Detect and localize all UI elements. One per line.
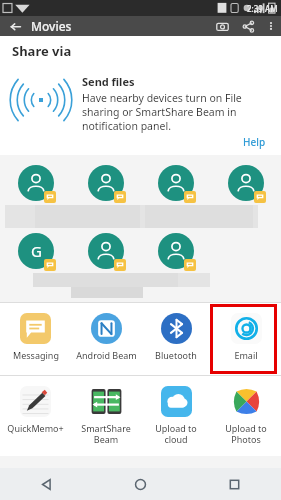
staticText: 2:39 AM — [247, 3, 278, 14]
staticText: G — [31, 241, 42, 261]
button[interactable]: Back — [0, 16, 30, 36]
button[interactable]: Recent apps — [187, 468, 281, 500]
button[interactable]: More options — [261, 16, 281, 36]
button[interactable]: Contact — [86, 231, 126, 271]
staticText: Movies — [31, 18, 72, 34]
button[interactable]: Contact — [86, 163, 126, 203]
button[interactable]: Back — [0, 468, 93, 500]
button[interactable]: Contact — [226, 163, 266, 203]
staticText: Have nearby devices turn on File sharing… — [82, 91, 271, 133]
staticText: Bluetooth — [155, 349, 197, 361]
button[interactable]: Capture — [209, 16, 235, 36]
button[interactable]: Contact — [156, 231, 196, 271]
button[interactable]: Email — [211, 303, 281, 375]
staticText: Help — [243, 135, 266, 149]
button[interactable]: Bluetooth — [141, 303, 211, 375]
button[interactable]: Contact — [16, 231, 56, 271]
staticText: Upload to cloud — [155, 422, 197, 445]
button[interactable]: Home — [93, 468, 187, 500]
button[interactable]: Upload to cloud — [141, 376, 211, 456]
staticText: QuickMemo+ — [7, 422, 64, 434]
staticText: Android Beam — [76, 349, 137, 361]
staticText: Email — [234, 349, 258, 361]
button[interactable]: Help — [241, 134, 268, 150]
button[interactable]: QuickMemo+ — [0, 376, 71, 456]
button[interactable]: Messaging — [0, 303, 71, 375]
staticText: SmartShare Beam — [81, 422, 131, 445]
button[interactable]: Upload to Photos — [211, 376, 281, 456]
button[interactable]: Contact — [156, 163, 196, 203]
staticText: Send files — [82, 74, 135, 89]
staticText: Upload to Photos — [225, 422, 267, 445]
staticText: Share via — [12, 42, 72, 60]
button[interactable]: SmartShare Beam — [71, 376, 141, 456]
staticText: Messaging — [13, 349, 59, 361]
button[interactable]: Android Beam — [71, 303, 141, 375]
button[interactable]: Contact — [16, 163, 56, 203]
button[interactable]: Share — [235, 16, 261, 36]
